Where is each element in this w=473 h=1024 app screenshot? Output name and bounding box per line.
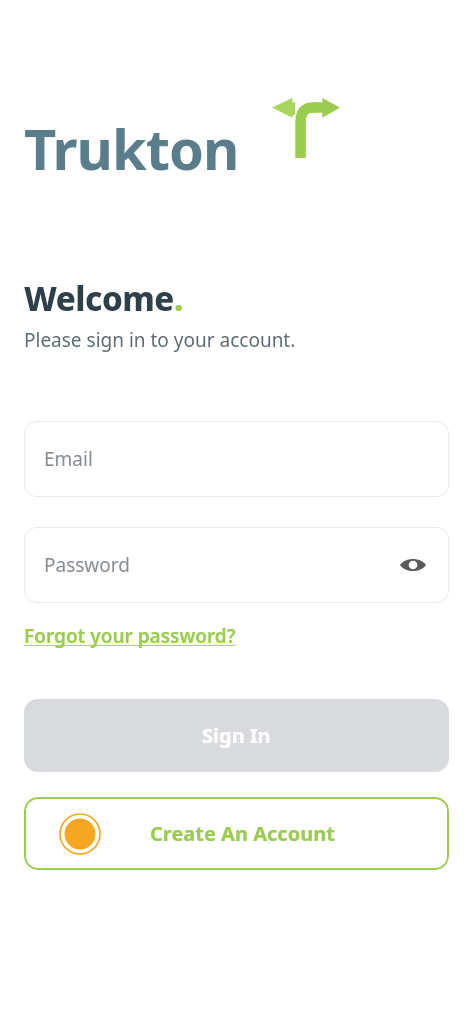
- staticText: Welcome: [24, 276, 174, 321]
- button[interactable]: Sign In: [24, 699, 449, 772]
- staticText: .: [174, 276, 184, 321]
- button[interactable]: Forgot your password?: [24, 623, 236, 649]
- staticText: Create An Account: [150, 820, 335, 847]
- staticText: Password: [44, 552, 130, 578]
- button[interactable]: Create An Account: [24, 797, 449, 870]
- button[interactable]: Password: [24, 527, 449, 603]
- staticText: Please sign in to your account.: [24, 327, 296, 353]
- staticText: Sign In: [202, 722, 271, 749]
- button[interactable]: Show password: [397, 549, 429, 581]
- staticText: Email: [44, 446, 93, 472]
- staticText: Trukton: [24, 110, 239, 186]
- button[interactable]: Email: [24, 421, 449, 497]
- staticText: Forgot your password?: [24, 623, 236, 649]
